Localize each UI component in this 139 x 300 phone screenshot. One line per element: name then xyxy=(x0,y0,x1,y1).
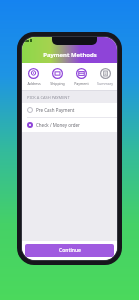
button[interactable]: Summary xyxy=(93,63,117,90)
staticText: Pre Cash Payment xyxy=(36,107,75,113)
button[interactable]: Pre Cash Payment xyxy=(22,103,117,117)
staticText: Check / Money order xyxy=(36,122,80,128)
staticText: Continue xyxy=(59,247,81,254)
button[interactable]: Address xyxy=(22,63,45,90)
staticText: Payment xyxy=(74,81,89,86)
button[interactable]: Payment xyxy=(69,63,93,90)
button[interactable]: Continue xyxy=(25,244,114,257)
button[interactable]: Check / Money order xyxy=(22,118,117,132)
staticText: Summary xyxy=(97,81,113,86)
staticText: Address xyxy=(27,81,41,86)
staticText: Shipping xyxy=(50,81,65,86)
staticText: PICK A CASH PAYMENT xyxy=(27,95,70,100)
staticText: Payment Methods xyxy=(43,51,97,59)
button[interactable]: Shipping xyxy=(45,63,69,90)
